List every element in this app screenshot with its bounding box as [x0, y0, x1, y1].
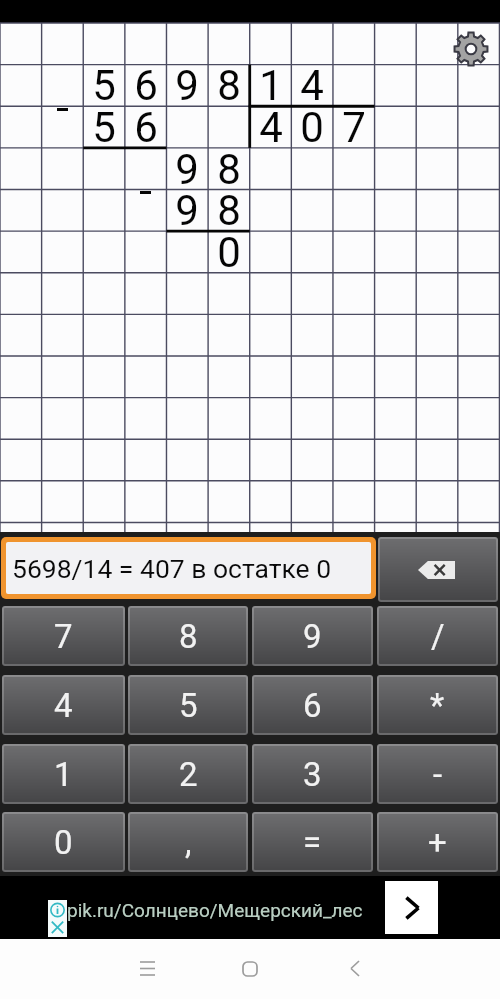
staticText: 2 — [179, 755, 198, 794]
button[interactable]: 4 — [2, 675, 125, 735]
staticText: 1 — [259, 61, 283, 103]
staticText: 7 — [54, 617, 73, 656]
staticText: 4 — [54, 686, 73, 725]
button[interactable]: / — [377, 606, 498, 666]
staticText: 4 — [300, 61, 324, 103]
button[interactable]: 1 — [2, 744, 125, 804]
button[interactable]: Settings — [454, 32, 488, 66]
staticText: 9 — [303, 617, 322, 656]
button[interactable]: 6 — [252, 675, 373, 735]
button[interactable]: Home — [220, 939, 281, 999]
staticText: 9 — [175, 61, 199, 103]
staticText: 6 — [134, 103, 158, 145]
staticText: 5698/14 = 407 в остатке 0 — [12, 553, 332, 584]
staticText: 7 — [342, 103, 366, 145]
button[interactable]: 0 — [2, 812, 125, 872]
button[interactable]: 5698/14 = 407 в остатке 0 — [6, 542, 371, 594]
button[interactable]: Back — [324, 939, 385, 999]
staticText: = — [303, 823, 322, 862]
button[interactable]: - — [377, 744, 498, 804]
button[interactable]: 8 — [128, 606, 248, 666]
button[interactable]: 3 — [252, 744, 373, 804]
staticText: 5 — [179, 686, 198, 725]
staticText: 0 — [54, 823, 73, 862]
button[interactable]: + — [377, 812, 498, 872]
staticText: 4 — [259, 103, 283, 145]
staticText: 3 — [303, 755, 322, 794]
staticText: / — [431, 617, 445, 656]
button[interactable]: = — [252, 812, 373, 872]
staticText: 0 — [217, 228, 241, 270]
button[interactable]: 9 — [252, 606, 373, 666]
staticText: 5 — [92, 61, 116, 103]
staticText: 8 — [217, 145, 241, 187]
staticText: * — [430, 686, 445, 725]
button[interactable]: Backspace — [378, 537, 498, 602]
staticText: 8 — [217, 61, 241, 103]
button[interactable]: 7 — [2, 606, 125, 666]
button[interactable]: Recent apps — [117, 939, 178, 999]
button[interactable]: 5 — [128, 675, 248, 735]
staticText: 1 — [54, 755, 73, 794]
staticText: 5 — [92, 103, 116, 145]
staticText: 8 — [217, 186, 241, 228]
staticText: 9 — [175, 186, 199, 228]
staticText: + — [428, 823, 447, 862]
staticText: 6 — [303, 686, 322, 725]
staticText: 8 — [179, 617, 198, 656]
staticText: , — [185, 823, 192, 862]
staticText: - — [433, 755, 443, 794]
button[interactable]: 2 — [128, 744, 248, 804]
staticText: pik.ru/Солнцево/Мещерский_лес — [67, 899, 363, 921]
button[interactable]: Open advertisement — [385, 881, 438, 934]
button[interactable]: , — [128, 812, 248, 872]
button[interactable]: * — [377, 675, 498, 735]
staticText: 9 — [175, 145, 199, 187]
staticText: 6 — [134, 61, 158, 103]
staticText: 0 — [300, 103, 324, 145]
